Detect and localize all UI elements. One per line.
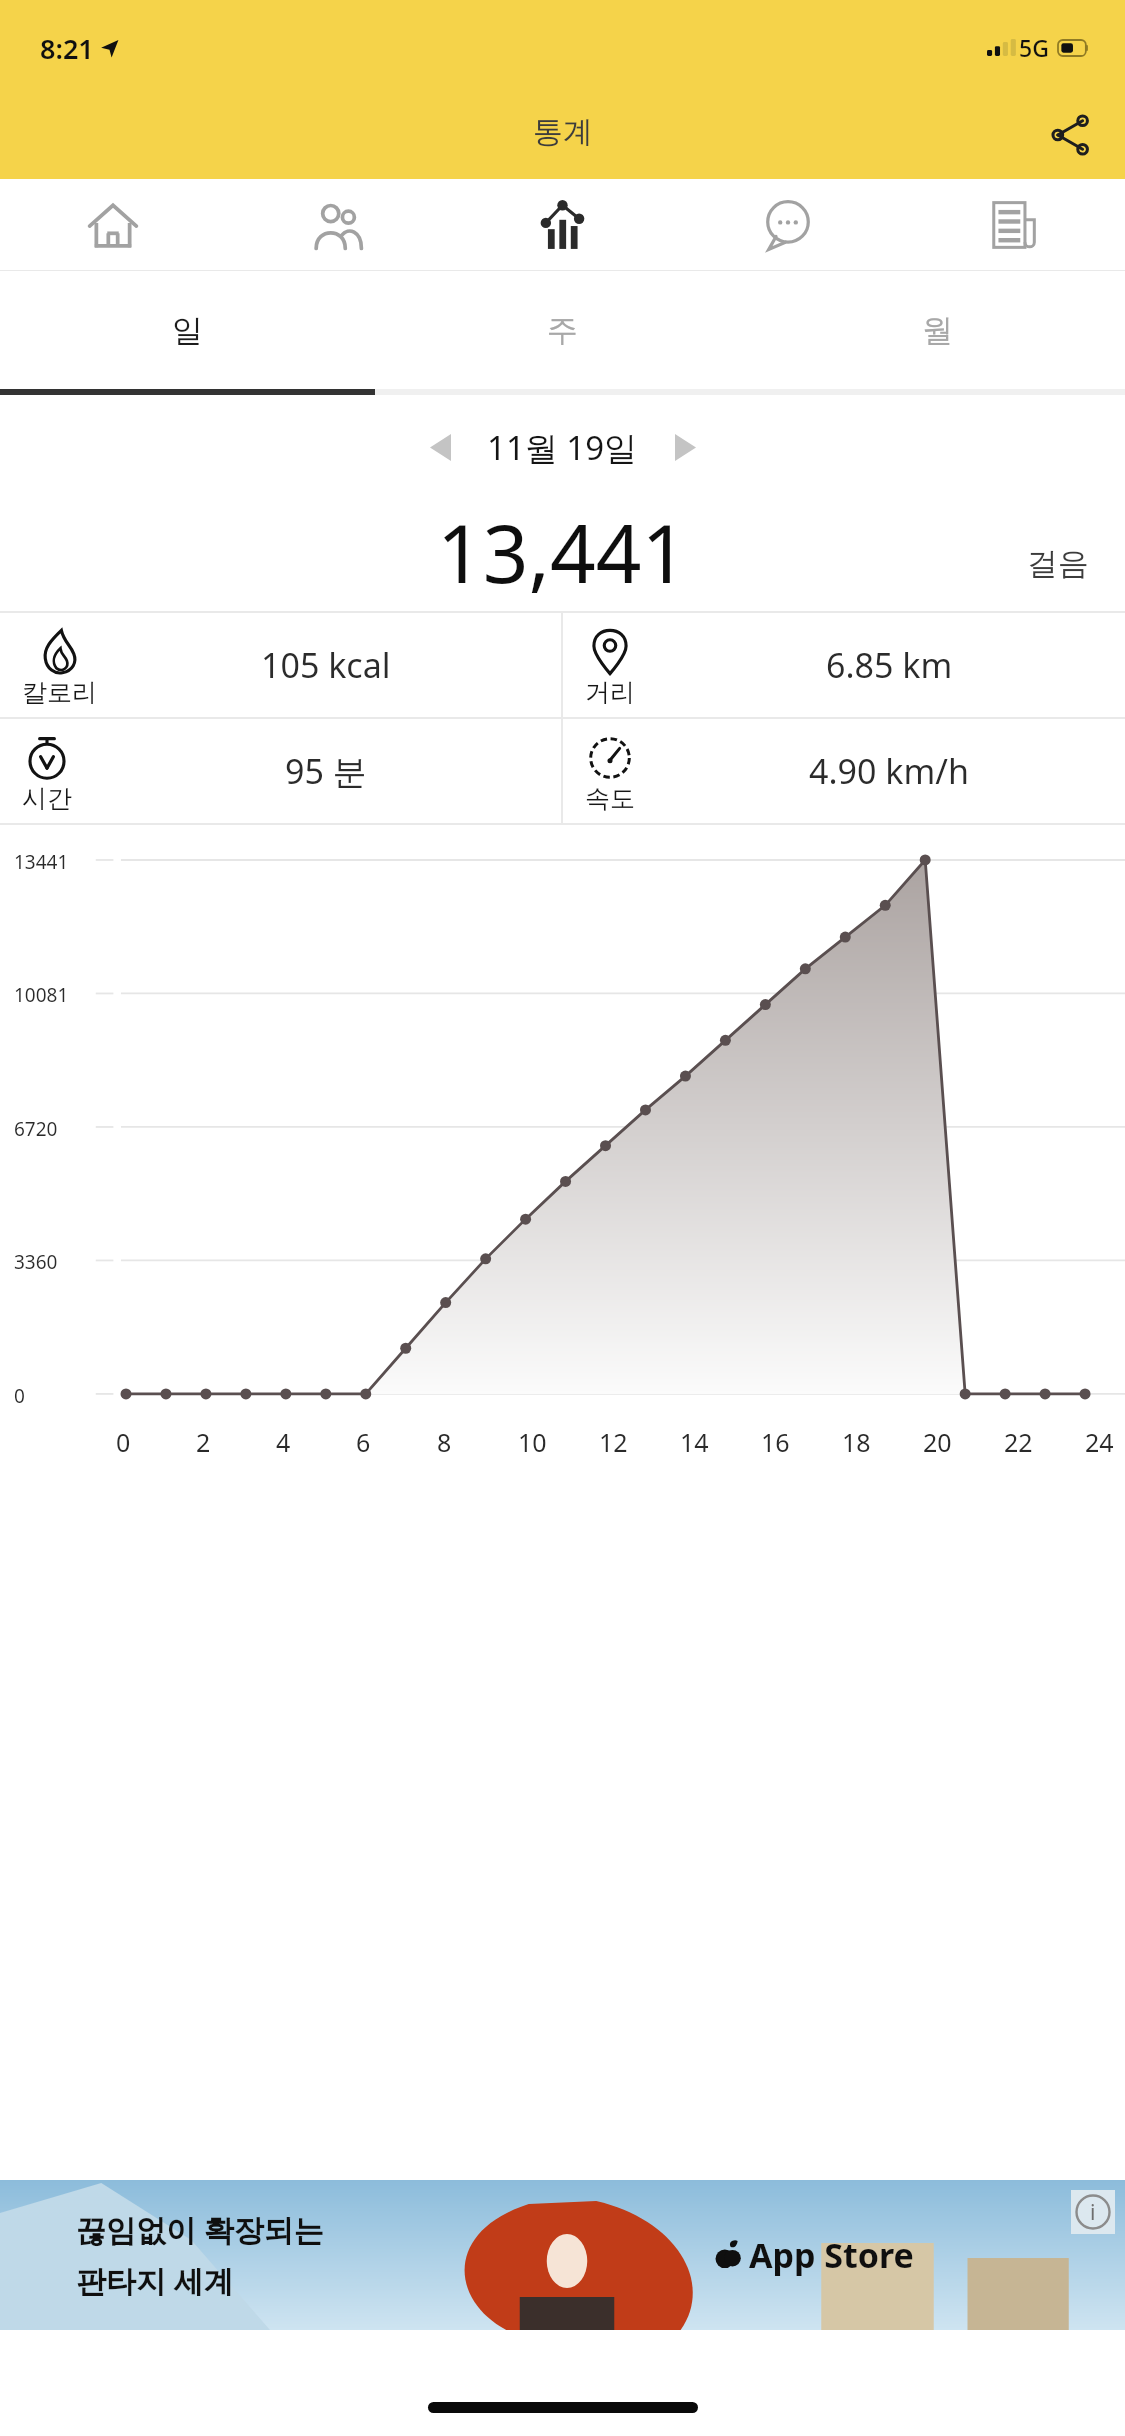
staticText: 거리 <box>585 677 635 708</box>
staticText: 14 <box>680 1425 761 1459</box>
button[interactable]: 시간 <box>0 719 561 823</box>
button[interactable]: Friends <box>225 179 450 270</box>
staticText: 4.90 km/h <box>809 748 969 794</box>
button[interactable]: 끊임없이 확장되는 <box>0 2180 1125 2330</box>
staticText: i <box>1090 2198 1096 2227</box>
button[interactable]: Chat <box>675 179 900 270</box>
staticText: 8 <box>437 1425 518 1459</box>
staticText: 13,441 <box>437 497 688 606</box>
button[interactable]: 일 <box>0 271 375 389</box>
staticText: 속도 <box>585 783 635 814</box>
staticText: 105 kcal <box>261 642 391 688</box>
staticText: 6.85 km <box>826 642 953 688</box>
button[interactable]: 칼로리 <box>0 613 561 717</box>
staticText: 24 <box>1085 1425 1125 1459</box>
staticText: 20 <box>923 1425 1004 1459</box>
button[interactable]: 거리 <box>563 613 1125 717</box>
staticText: 18 <box>842 1425 923 1459</box>
staticText: 12 <box>599 1425 680 1459</box>
staticText: 통계 <box>533 113 593 151</box>
staticText: 10 <box>518 1425 599 1459</box>
staticText: 13441 <box>14 849 69 875</box>
staticText: 16 <box>761 1425 842 1459</box>
button[interactable]: Next day <box>650 412 720 482</box>
staticText: 칼로리 <box>22 677 97 708</box>
staticText: 주 <box>547 311 578 350</box>
staticText: 8:21 <box>40 30 94 67</box>
button[interactable]: News <box>900 179 1125 270</box>
staticText: 22 <box>1004 1425 1085 1459</box>
staticText: 6720 <box>14 1116 58 1142</box>
staticText: 0 <box>116 1425 196 1459</box>
button[interactable]: Statistics <box>450 179 675 270</box>
staticText: 11월 19일 <box>487 425 638 470</box>
staticText: 6 <box>356 1425 437 1459</box>
button[interactable]: Previous day <box>405 412 475 482</box>
staticText: 95 분 <box>285 748 367 794</box>
staticText: 시간 <box>22 783 72 814</box>
staticText: 5G <box>1019 32 1049 63</box>
staticText: App Store <box>749 2232 914 2278</box>
staticText: 4 <box>276 1425 356 1459</box>
staticText: 3360 <box>14 1249 58 1275</box>
button[interactable]: 월 <box>750 271 1125 389</box>
staticText: 0 <box>14 1383 25 1409</box>
staticText: 월 <box>922 311 953 350</box>
button[interactable]: 주 <box>375 271 750 389</box>
button[interactable]: 속도 <box>563 719 1125 823</box>
button[interactable]: Home <box>0 179 225 270</box>
staticText: 10081 <box>14 982 69 1008</box>
staticText: 걸음 <box>1027 544 1089 583</box>
staticText: 판타지 세계 <box>76 2260 234 2301</box>
button[interactable]: Share <box>1035 100 1105 170</box>
button[interactable]: Ad info <box>1071 2190 1115 2234</box>
staticText: 끊임없이 확장되는 <box>76 2209 324 2250</box>
staticText: 일 <box>172 311 203 350</box>
staticText: 2 <box>196 1425 276 1459</box>
